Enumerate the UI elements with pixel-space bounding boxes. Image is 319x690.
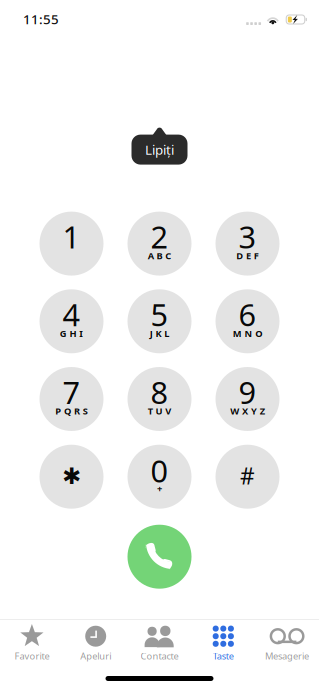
staticText: 7 [62, 372, 80, 412]
staticText: + [157, 482, 162, 495]
button[interactable]: 1 [39, 212, 103, 276]
staticText: MNO [233, 327, 262, 339]
button[interactable]: 0 [127, 445, 191, 509]
staticText: DEF [236, 249, 259, 262]
button[interactable]: Mesagerie [255, 617, 319, 667]
button[interactable]: Favorite [0, 617, 64, 667]
button[interactable]: ✱ [39, 445, 103, 509]
staticText: 2 [150, 216, 168, 257]
button[interactable]: 2 [127, 212, 191, 276]
staticText: Apeluri [80, 650, 111, 662]
staticText: ABC [148, 249, 171, 262]
staticText: WXYZ [230, 405, 265, 417]
staticText: 9 [238, 372, 256, 412]
button[interactable]: 7 [39, 367, 103, 431]
staticText: Favorite [14, 650, 49, 662]
staticText: JKL [150, 327, 169, 339]
button[interactable]: Taste [191, 617, 255, 667]
button[interactable]: 8 [127, 367, 191, 431]
staticText: 6 [238, 294, 256, 335]
button[interactable]: Apeluri [64, 617, 128, 667]
staticText: TUV [148, 405, 171, 417]
button[interactable]: Contacte [128, 617, 191, 667]
button[interactable]: # [215, 445, 279, 509]
staticText: 3 [238, 216, 256, 257]
staticText: Contacte [140, 650, 178, 662]
staticText: 8 [150, 372, 168, 412]
button[interactable]: 6 [215, 289, 279, 353]
staticText: 11:55 [23, 10, 59, 28]
staticText: 5 [150, 294, 168, 335]
button[interactable]: 4 [39, 289, 103, 353]
button[interactable]: Lipiți [131, 127, 187, 165]
button[interactable]: 5 [127, 289, 191, 353]
staticText: Lipiți [145, 141, 174, 158]
staticText: # [240, 461, 255, 491]
staticText: PQRS [55, 405, 88, 417]
staticText: Mesagerie [265, 650, 309, 662]
staticText: Taste [213, 650, 234, 662]
button[interactable]: 3 [215, 212, 279, 276]
button[interactable]: Call [127, 525, 191, 589]
staticText: ✱ [62, 463, 81, 489]
button[interactable]: 9 [215, 367, 279, 431]
staticText: 4 [62, 294, 80, 335]
staticText: 1 [62, 216, 80, 257]
staticText: GHI [60, 327, 83, 339]
staticText: 0 [150, 450, 168, 491]
